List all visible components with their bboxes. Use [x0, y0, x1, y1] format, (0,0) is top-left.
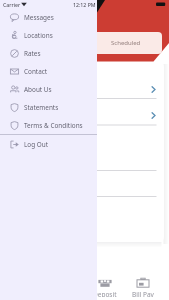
- button[interactable]: About Us: [0, 80, 97, 98]
- staticText: Statements: [24, 103, 59, 112]
- staticText: Bill Pay: [132, 290, 154, 297]
- staticText: About Us: [24, 85, 52, 94]
- staticText: Log Out: [24, 140, 49, 149]
- staticText: Messages: [24, 13, 54, 22]
- staticText: Rates: [24, 49, 41, 58]
- staticText: Contact: [24, 67, 48, 76]
- button[interactable]: Messages: [0, 8, 97, 26]
- other: Battery: [156, 2, 166, 7]
- staticText: 12:12 PM: [73, 1, 96, 8]
- button[interactable]: [4, 62, 164, 98]
- button[interactable]: Deposit: [86, 277, 124, 297]
- staticText: Deposit: [93, 290, 117, 297]
- button[interactable]: Rates: [0, 44, 97, 62]
- button[interactable]: [4, 170, 164, 196]
- button[interactable]: Log Out: [0, 135, 97, 153]
- button[interactable]: [4, 196, 164, 242]
- staticText: Terms & Conditions: [24, 121, 83, 130]
- button[interactable]: Locations: [0, 26, 97, 44]
- button[interactable]: Contact: [0, 62, 97, 80]
- button[interactable]: Bill Pay: [124, 277, 162, 297]
- button[interactable]: Statements: [0, 98, 97, 116]
- button[interactable]: Scheduled: [90, 32, 162, 54]
- staticText: Carrier: [3, 1, 21, 8]
- staticText: Scheduled: [111, 39, 141, 47]
- staticText: Locations: [24, 31, 53, 40]
- button[interactable]: [4, 98, 164, 124]
- button[interactable]: [4, 124, 164, 170]
- button[interactable]: Terms & Conditions: [0, 116, 97, 134]
